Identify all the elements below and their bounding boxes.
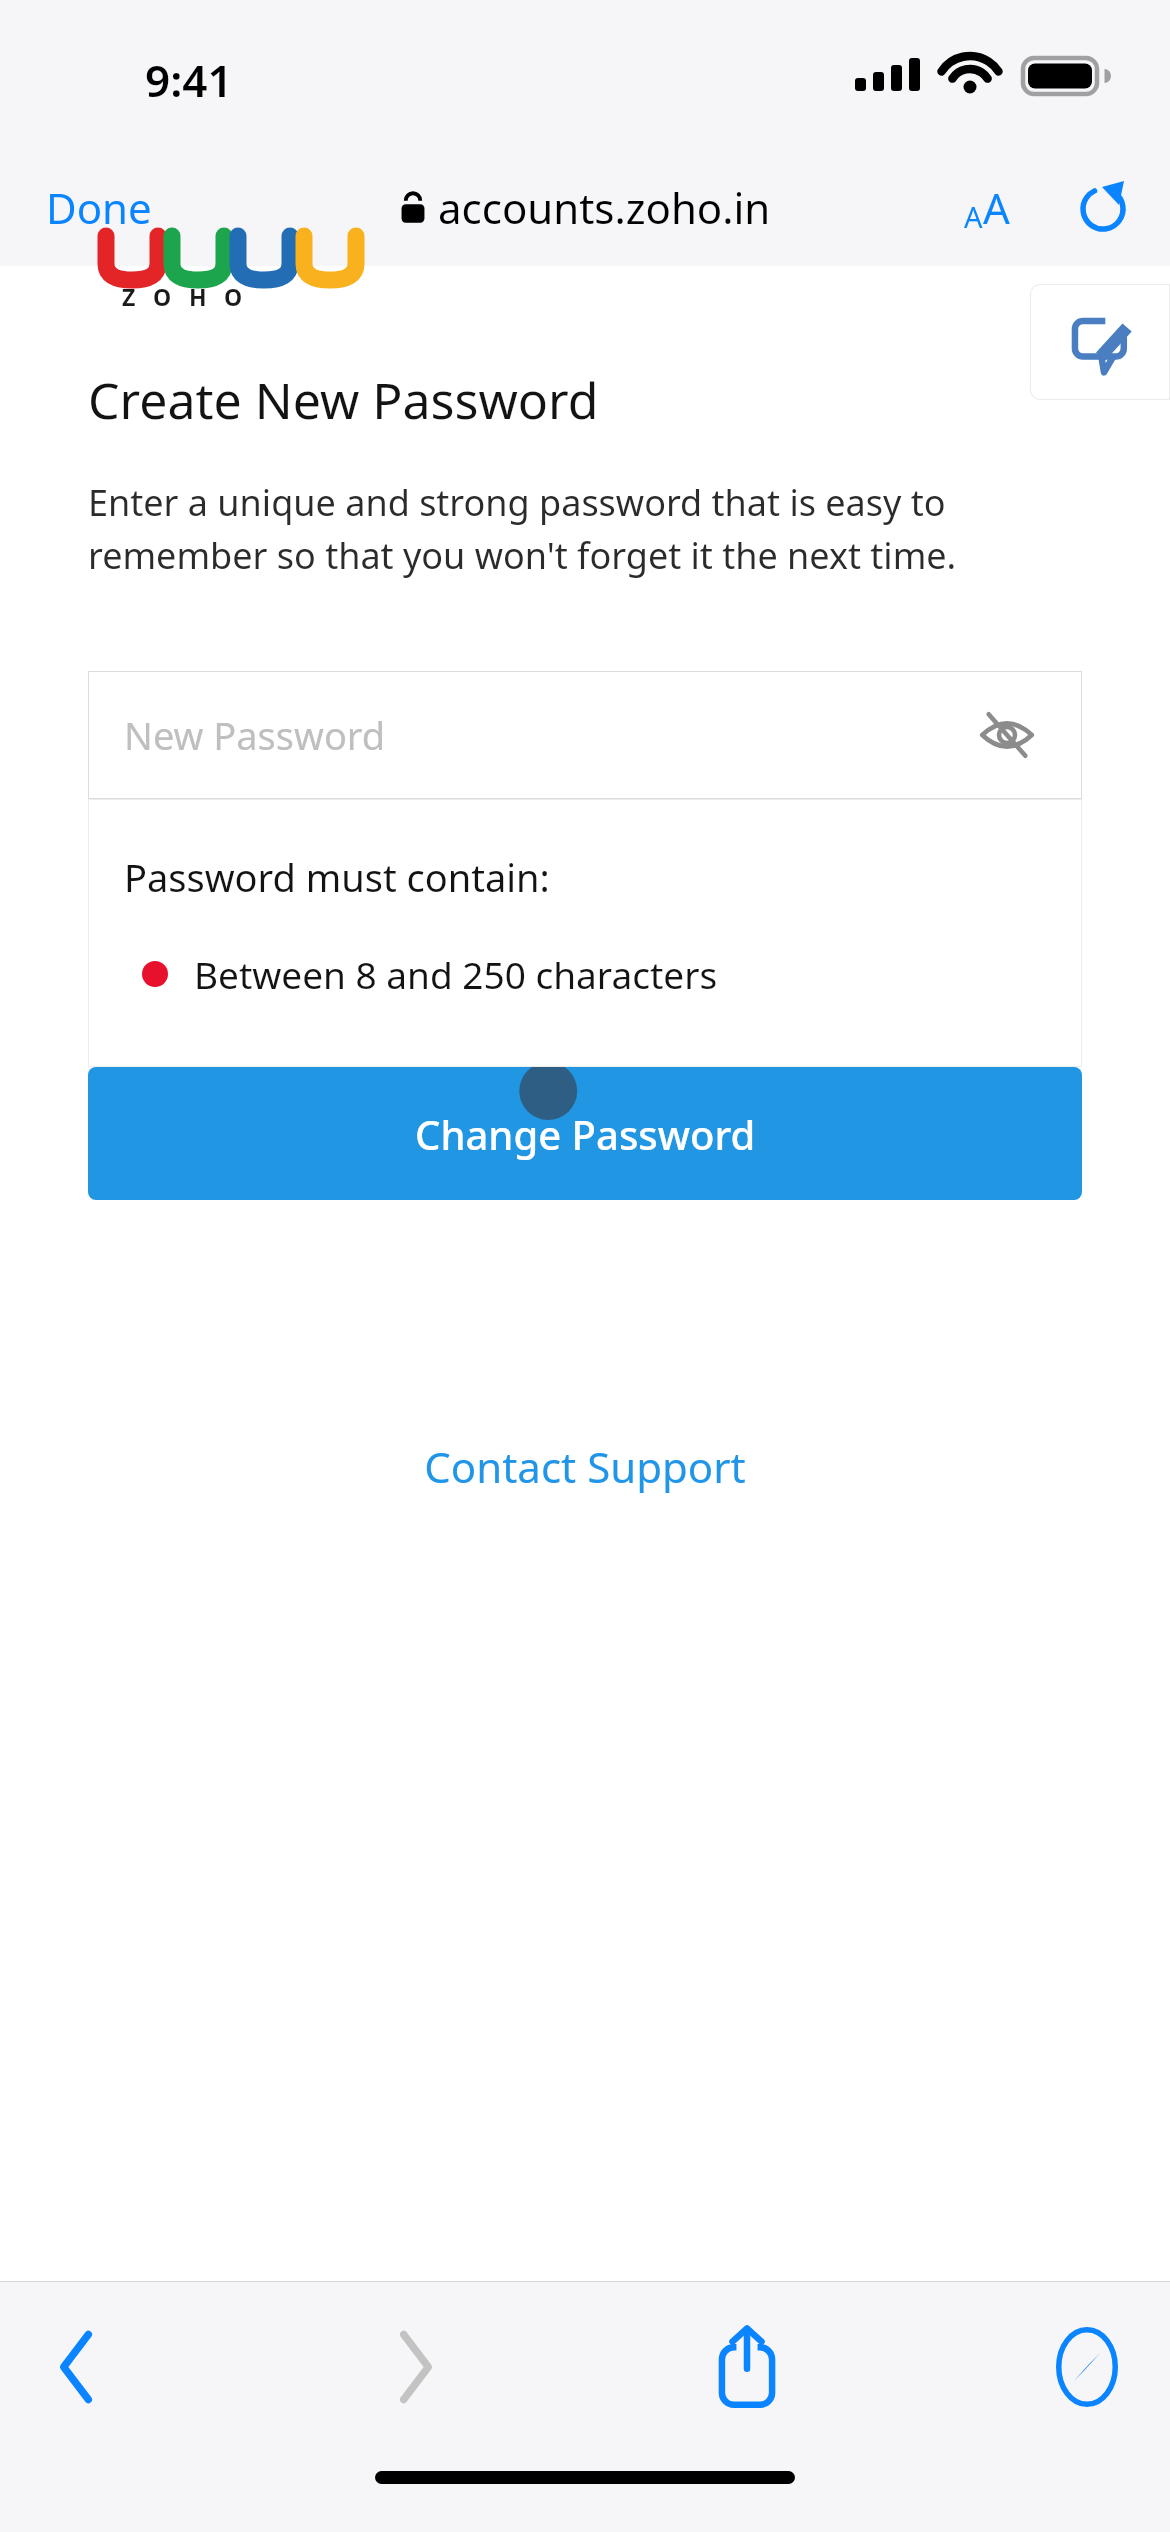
staticText: Between 8 and 250 characters [194, 949, 718, 999]
staticText: Create New Password [88, 366, 599, 434]
staticText: 9:41 [145, 50, 233, 110]
staticText: Change Password [415, 1107, 756, 1161]
button[interactable]: Share [700, 2312, 794, 2422]
staticText: A [983, 179, 1010, 236]
staticText: accounts.zoho.in [438, 179, 771, 236]
button[interactable]: Contact Support [408, 1428, 762, 1505]
staticText: Z [122, 281, 136, 312]
button[interactable]: Done [24, 165, 174, 250]
staticText: Contact Support [424, 1438, 746, 1495]
staticText: O [153, 281, 172, 312]
staticText: Enter a unique and strong password that … [88, 478, 1082, 579]
button[interactable]: Forward [374, 2310, 458, 2424]
button[interactable]: Show password [974, 709, 1040, 761]
button[interactable]: accounts.zoho.in [386, 169, 785, 246]
staticText: A [964, 197, 983, 236]
staticText: Password must contain: [124, 851, 550, 903]
button[interactable]: Change Password [88, 1067, 1082, 1200]
staticText: H [189, 281, 207, 312]
button[interactable]: Reload [1066, 170, 1140, 244]
staticText: Done [46, 179, 152, 236]
button[interactable]: Back [34, 2310, 118, 2424]
button[interactable]: Feedback [1030, 284, 1170, 400]
button[interactable]: New Password [88, 671, 1082, 799]
button[interactable]: Tabs [1042, 2313, 1132, 2421]
staticText: New Password [124, 709, 386, 761]
button[interactable]: Text size options [952, 167, 1022, 248]
staticText: O [224, 281, 243, 312]
